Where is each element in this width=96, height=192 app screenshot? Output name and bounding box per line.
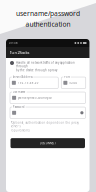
staticText: Password — [13, 105, 25, 109]
staticText: ycenterprise3-country.co — [18, 96, 52, 99]
staticText: authentication — [25, 20, 70, 29]
staticText: 192.75.48.20 — [18, 81, 39, 84]
staticText: Port — [64, 75, 70, 79]
staticText: Handle all network traffic of any applic… — [16, 61, 75, 68]
staticText: *Optional, authentication depends on the… — [10, 121, 78, 128]
staticText: requirements — [10, 129, 29, 132]
staticText: DISCONNECT — [40, 141, 56, 145]
staticText: username/password — [16, 9, 80, 18]
staticText: Server/Address — [13, 75, 33, 79]
button[interactable]: DISCONNECT — [10, 138, 85, 148]
staticText: 09:38 — [9, 41, 18, 45]
staticText: by the device through a proxy — [16, 68, 57, 72]
staticText: Tun2Socks — [9, 50, 29, 55]
staticText: 5244 — [69, 81, 77, 84]
staticText: Username — [13, 90, 26, 94]
